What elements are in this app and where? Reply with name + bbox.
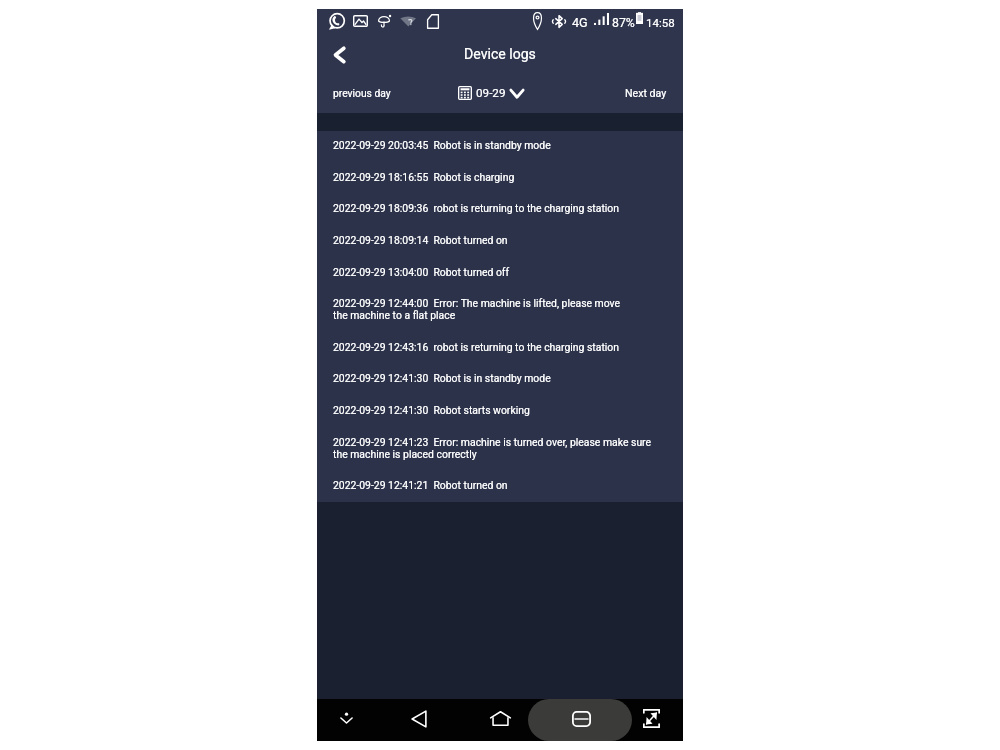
button[interactable]: Back xyxy=(403,702,435,738)
button[interactable]: Home xyxy=(484,702,516,738)
staticText: 09-29 xyxy=(476,86,506,100)
button[interactable]: 09-29 xyxy=(453,80,530,106)
button[interactable]: 2022-09-29 12:41:23 Error: machine is tu… xyxy=(317,436,683,750)
button[interactable]: Recent apps xyxy=(528,699,632,741)
staticText: 2022-09-29 12:43:16 robot is returning t… xyxy=(333,341,620,353)
staticText: 2022-09-29 12:41:21 Robot turned on xyxy=(333,479,508,491)
button[interactable]: 2022-09-29 12:41:21 Robot turned on xyxy=(317,479,683,750)
button[interactable]: 2022-09-29 12:41:30 Robot starts working xyxy=(317,404,683,750)
button[interactable]: 2022-09-29 20:03:45 Robot is in standby … xyxy=(317,139,683,510)
button[interactable]: previous day xyxy=(327,81,397,105)
staticText: Next day xyxy=(625,87,667,99)
button[interactable]: 2022-09-29 13:04:00 Robot turned off xyxy=(317,266,683,637)
staticText: 2022-09-29 12:41:30 Robot is in standby … xyxy=(333,372,551,384)
staticText: 2022-09-29 18:16:55 Robot is charging xyxy=(333,171,515,183)
button[interactable]: 2022-09-29 18:09:36 robot is returning t… xyxy=(317,202,683,573)
button[interactable]: Full screen xyxy=(635,702,667,738)
button[interactable]: 2022-09-29 18:16:55 Robot is charging xyxy=(317,171,683,542)
staticText: 2022-09-29 12:41:23 Error: machine is tu… xyxy=(333,436,652,460)
button[interactable]: Next day xyxy=(619,81,673,105)
button[interactable]: Recent apps xyxy=(565,702,597,738)
staticText: Device logs xyxy=(464,46,536,63)
staticText: 2022-09-29 12:44:00 Error: The machine i… xyxy=(333,297,621,321)
staticText: 2022-09-29 13:04:00 Robot turned off xyxy=(333,266,510,278)
button[interactable]: 2022-09-29 18:09:14 Robot turned on xyxy=(317,234,683,605)
button[interactable]: Back xyxy=(324,40,354,70)
button[interactable]: 2022-09-29 12:43:16 robot is returning t… xyxy=(317,341,683,712)
staticText: 2022-09-29 18:09:14 Robot turned on xyxy=(333,234,508,246)
staticText: 2022-09-29 20:03:45 Robot is in standby … xyxy=(333,139,551,151)
button[interactable]: 2022-09-29 12:41:30 Robot is in standby … xyxy=(317,372,683,743)
button[interactable]: Hide keyboard xyxy=(330,702,362,738)
button[interactable]: 2022-09-29 12:44:00 Error: The machine i… xyxy=(317,297,683,668)
staticText: previous day xyxy=(333,87,391,99)
staticText: 2022-09-29 18:09:36 robot is returning t… xyxy=(333,202,620,214)
staticText: 87% xyxy=(612,16,635,30)
staticText: 4G xyxy=(572,15,588,30)
staticText: 14:58 xyxy=(646,16,675,29)
staticText: 2022-09-29 12:41:30 Robot starts working xyxy=(333,404,530,416)
